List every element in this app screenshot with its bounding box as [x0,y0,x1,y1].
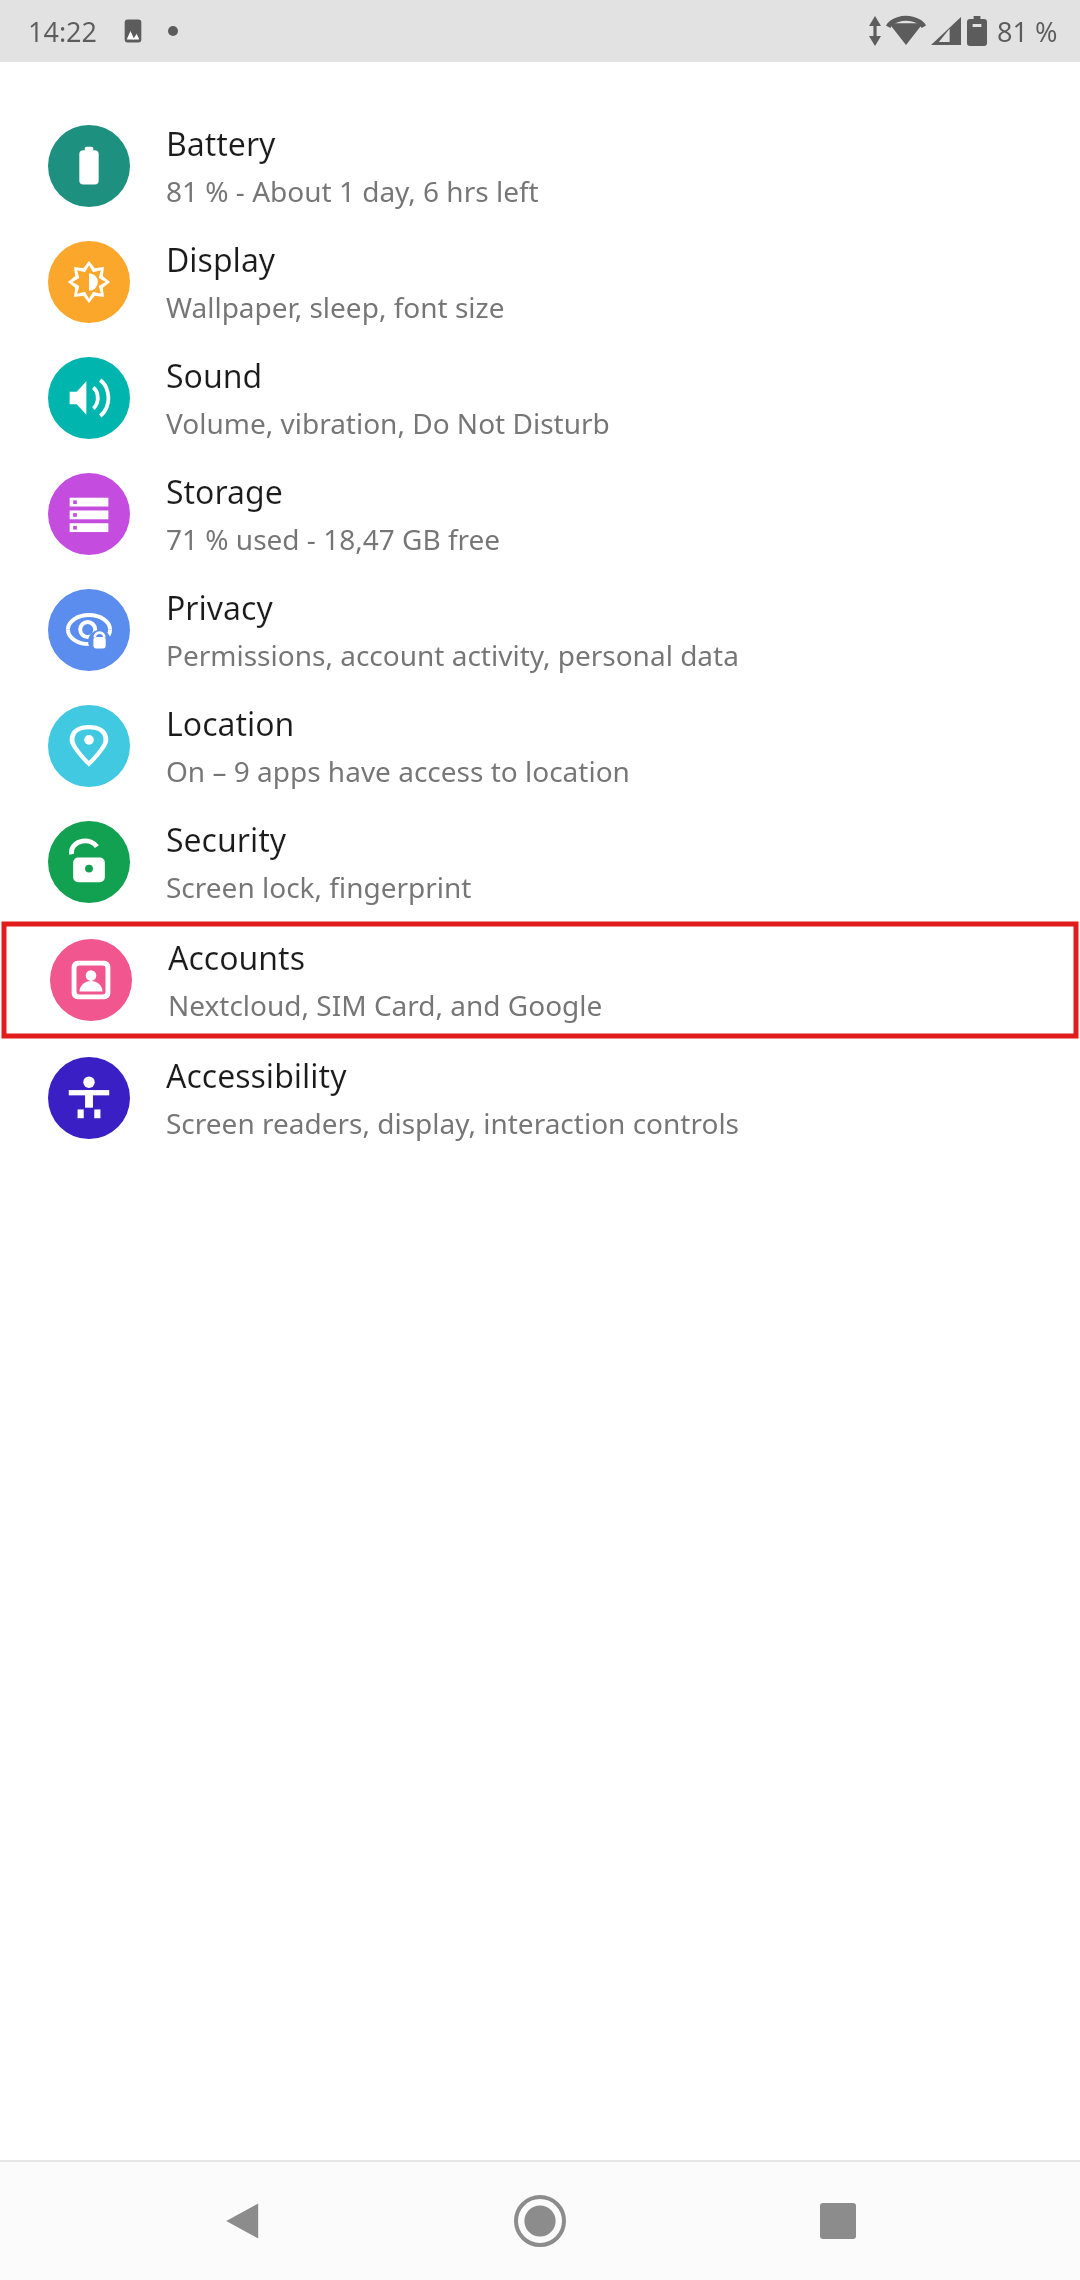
staticText: 81 % - About 1 day, 6 hrs left [166,172,539,210]
button[interactable]: Security [0,804,1080,920]
staticText: Accessibility [166,1054,347,1098]
staticText: Display [166,238,276,282]
button[interactable]: Accessibility [0,1040,1080,1156]
staticText: Permissions, account activity, personal … [166,636,739,674]
button[interactable]: Privacy [0,572,1080,688]
staticText: Wallpaper, sleep, font size [166,288,505,326]
staticText: 81 % [997,13,1058,50]
button[interactable]: Display [0,224,1080,340]
staticText: On – 9 apps have access to location [166,752,630,790]
staticText: Screen readers, display, interaction con… [166,1104,740,1142]
staticText: 14:22 [28,13,98,50]
button[interactable]: Battery [0,108,1080,224]
button[interactable]: Accounts [2,922,1078,1038]
button[interactable]: Back [188,2166,298,2276]
staticText: Volume, vibration, Do Not Disturb [166,404,610,442]
button[interactable]: Sound [0,340,1080,456]
staticText: Security [166,818,287,862]
staticText: Nextcloud, SIM Card, and Google [168,986,603,1024]
staticText: 71 % used - 18,47 GB free [166,520,501,558]
staticText: Location [166,702,295,746]
staticText: Storage [166,470,283,514]
staticText: Sound [166,354,263,398]
button[interactable]: Location [0,688,1080,804]
staticText: Screen lock, fingerprint [166,868,472,906]
staticText: Accounts [168,936,305,980]
button[interactable]: Storage [0,456,1080,572]
staticText: Privacy [166,586,273,630]
button[interactable]: Home [485,2166,595,2276]
staticText: Battery [166,122,276,166]
button[interactable]: Recents [783,2166,893,2276]
